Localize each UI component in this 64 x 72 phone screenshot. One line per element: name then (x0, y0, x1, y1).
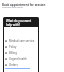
other: Orders (5, 64, 7, 66)
staticText: Book appointment for session (2, 3, 46, 7)
staticText: What do you want (6, 19, 32, 23)
other: Policy (5, 46, 7, 48)
other: Billing (5, 52, 7, 54)
staticText: help with? (6, 23, 21, 27)
other: Urgent health (5, 58, 7, 60)
staticText: Urgent health (9, 57, 27, 61)
staticText: Medical care service (9, 39, 35, 43)
staticText: Orders (9, 63, 18, 67)
other: Medical care service (5, 40, 7, 42)
button[interactable]: Medical care service (0, 38, 64, 43)
button[interactable]: Orders (0, 62, 64, 67)
button[interactable]: Urgent health (0, 56, 64, 61)
button[interactable]: Policy (0, 44, 64, 49)
staticText: Billing (9, 51, 17, 55)
staticText: Policy (9, 45, 17, 49)
button[interactable]: Billing (0, 50, 64, 55)
staticText: ordering help center (2, 6, 24, 9)
